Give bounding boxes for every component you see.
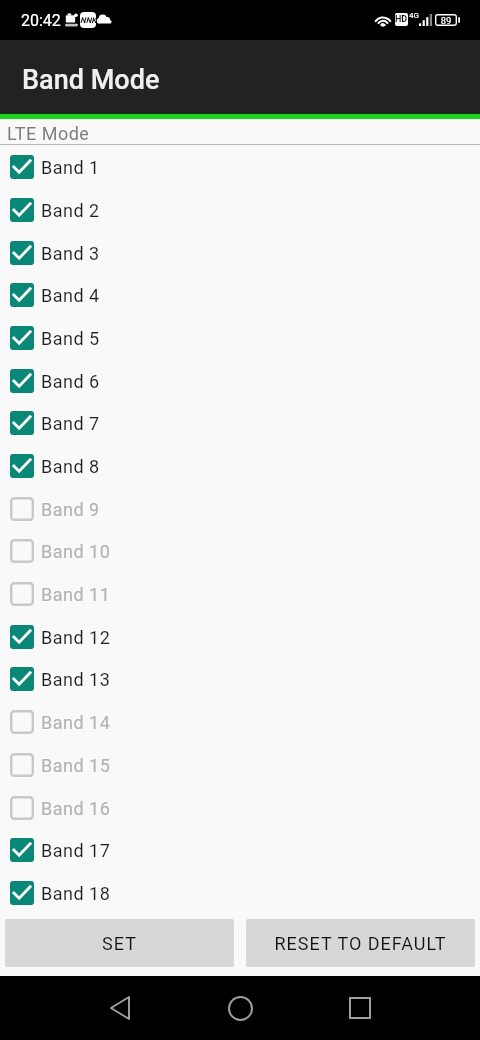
button[interactable]: Home <box>214 982 266 1034</box>
staticText: SET <box>102 933 137 954</box>
staticText: Band 18 <box>41 883 111 904</box>
button[interactable]: Band 11 <box>0 573 480 615</box>
staticText: Band 5 <box>41 328 100 349</box>
staticText: 89 <box>439 15 453 26</box>
staticText: LTE Mode <box>7 123 90 144</box>
staticText: Band Mode <box>22 64 160 96</box>
staticText: RESET TO DEFAULT <box>274 933 447 954</box>
staticText: Band 7 <box>41 413 100 434</box>
staticText: 4G <box>409 11 419 20</box>
staticText: Band 17 <box>41 840 111 861</box>
button[interactable]: Band 6 <box>0 360 480 402</box>
button[interactable]: RESET TO DEFAULT <box>246 919 475 967</box>
button[interactable]: Band 4 <box>0 274 480 316</box>
staticText: Band 8 <box>41 456 100 477</box>
staticText: Band 15 <box>41 755 111 776</box>
staticText: HD <box>395 14 408 25</box>
staticText: Band 4 <box>41 285 100 306</box>
button[interactable]: Band 3 <box>0 232 480 274</box>
staticText: Band 12 <box>41 627 111 648</box>
staticText: Band 14 <box>41 712 111 733</box>
button[interactable]: SET <box>5 919 234 967</box>
staticText: Band 9 <box>41 499 100 520</box>
button[interactable]: Band 12 <box>0 616 480 658</box>
button[interactable]: Band 15 <box>0 744 480 786</box>
staticText: 20:42 <box>21 11 61 30</box>
button[interactable]: Band 18 <box>0 872 480 914</box>
staticText: Band 13 <box>41 669 111 690</box>
button[interactable]: Band 2 <box>0 189 480 231</box>
button[interactable]: Band 8 <box>0 445 480 487</box>
staticText: Band 10 <box>41 541 111 562</box>
staticText: Band 11 <box>41 584 111 605</box>
button[interactable]: Band 9 <box>0 488 480 530</box>
button[interactable]: Band 7 <box>0 402 480 444</box>
staticText: Band 16 <box>41 798 111 819</box>
staticText: Band 1 <box>41 157 100 178</box>
button[interactable]: Band 14 <box>0 701 480 743</box>
button[interactable]: Recents <box>334 982 386 1034</box>
button[interactable]: Back <box>94 982 146 1034</box>
button[interactable]: Band 13 <box>0 658 480 700</box>
button[interactable]: Band 17 <box>0 829 480 871</box>
staticText: NNK <box>80 16 96 25</box>
staticText: Band 6 <box>41 371 100 392</box>
button[interactable]: Band 5 <box>0 317 480 359</box>
button[interactable]: Band 16 <box>0 787 480 829</box>
staticText: Band 2 <box>41 200 100 221</box>
staticText: Band 3 <box>41 243 100 264</box>
button[interactable]: Band 10 <box>0 530 480 572</box>
button[interactable]: Band 1 <box>0 146 480 188</box>
